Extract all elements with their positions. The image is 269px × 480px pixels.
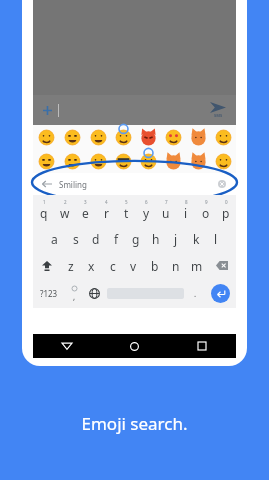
staticText: x — [88, 258, 95, 274]
button[interactable]: z — [61, 252, 81, 279]
staticText: f — [114, 231, 119, 247]
button[interactable]: Emoji — [136, 149, 161, 173]
button[interactable]: Send SMS — [206, 98, 230, 122]
staticText: s — [73, 231, 79, 247]
button[interactable]: c — [102, 252, 123, 279]
staticText: 0 — [225, 199, 228, 205]
staticText: i — [184, 205, 188, 221]
staticText: 8 — [185, 199, 188, 205]
button[interactable]: ?123 — [33, 279, 65, 308]
staticText: l — [214, 231, 218, 247]
button[interactable]: b — [144, 252, 165, 279]
button[interactable]: n — [165, 252, 186, 279]
button[interactable]: l — [206, 225, 226, 252]
staticText: n — [172, 258, 180, 274]
button[interactable]: Attach — [38, 101, 56, 119]
button[interactable]: 6 — [136, 195, 156, 225]
staticText: w — [60, 205, 70, 221]
button[interactable]: Emoji — [161, 149, 186, 173]
staticText: j — [174, 231, 178, 247]
staticText: , — [73, 291, 76, 302]
button[interactable]: f — [106, 225, 126, 252]
staticText: a — [51, 231, 58, 247]
button[interactable]: Emoji — [33, 149, 59, 173]
staticText: 6 — [145, 199, 148, 205]
button[interactable]: Emoji — [136, 125, 161, 149]
button[interactable]: 4 — [96, 195, 116, 225]
button[interactable]: 7 — [156, 195, 176, 225]
staticText: m — [191, 258, 203, 274]
button[interactable]: Clear — [216, 178, 228, 190]
button[interactable]: Back — [33, 173, 236, 195]
button[interactable]: Emoji — [186, 149, 211, 173]
staticText: ?123 — [40, 288, 58, 299]
button[interactable]: 5 — [116, 195, 136, 225]
button[interactable]: Recents — [168, 334, 236, 358]
button[interactable]: Emoji — [59, 149, 85, 173]
staticText: z — [68, 258, 74, 274]
button[interactable]: m — [186, 252, 207, 279]
staticText: Smiling — [59, 179, 87, 190]
button[interactable]: Shift — [33, 252, 61, 279]
staticText: d — [92, 231, 100, 247]
staticText: 3 — [84, 199, 87, 205]
button[interactable]: Emoji — [111, 149, 136, 173]
button[interactable]: v — [123, 252, 144, 279]
staticText: 1 — [43, 199, 46, 205]
button[interactable]: Emoji — [85, 149, 111, 173]
staticText: 4 — [105, 199, 108, 205]
staticText: q — [40, 205, 48, 221]
button[interactable]: Emoji — [33, 125, 59, 149]
button[interactable]: . — [186, 279, 205, 308]
button[interactable]: 2 — [54, 195, 75, 225]
staticText: k — [193, 231, 200, 247]
button[interactable]: s — [65, 225, 86, 252]
staticText: c — [110, 258, 116, 274]
staticText: 5 — [125, 199, 128, 205]
button[interactable]: Backspace — [207, 252, 236, 279]
staticText: g — [132, 231, 140, 247]
button[interactable]: Emoji — [161, 125, 186, 149]
button[interactable]: a — [44, 225, 65, 252]
button[interactable]: k — [186, 225, 206, 252]
staticText: SMS — [214, 113, 223, 118]
button[interactable]: Emoji — [211, 149, 236, 173]
staticText: 9 — [205, 199, 208, 205]
button[interactable]: Back — [33, 334, 100, 358]
button[interactable]: 9 — [196, 195, 216, 225]
staticText: p — [222, 205, 230, 221]
staticText: y — [143, 205, 150, 221]
button[interactable]: Emoji — [211, 125, 236, 149]
button[interactable]: Home — [100, 334, 168, 358]
staticText: 7 — [165, 199, 168, 205]
button[interactable]: h — [146, 225, 166, 252]
staticText: r — [104, 205, 109, 221]
staticText: u — [162, 205, 170, 221]
button[interactable]: Emoji — [111, 125, 136, 149]
staticText: v — [130, 258, 137, 274]
button[interactable]: 0 — [216, 195, 236, 225]
button[interactable]: 1 — [33, 195, 54, 225]
staticText: e — [82, 205, 89, 221]
staticText: t — [124, 205, 129, 221]
button[interactable]: d — [86, 225, 106, 252]
other: Back — [41, 178, 53, 190]
button[interactable]: Enter — [211, 284, 230, 303]
staticText: . — [194, 288, 197, 299]
staticText: o — [202, 205, 210, 221]
button[interactable]: Emoji — [186, 125, 211, 149]
staticText: 2 — [64, 199, 67, 205]
button[interactable]: Emoji — [85, 125, 111, 149]
button[interactable]: Comma — [65, 279, 84, 308]
button[interactable]: g — [126, 225, 146, 252]
button[interactable]: Emoji — [59, 125, 85, 149]
button[interactable]: 3 — [75, 195, 96, 225]
button[interactable]: 8 — [176, 195, 196, 225]
button[interactable]: Change language — [84, 279, 105, 308]
staticText: Emoji search. — [0, 412, 269, 435]
staticText: b — [151, 258, 159, 274]
button[interactable]: j — [166, 225, 186, 252]
staticText: h — [152, 231, 160, 247]
button[interactable]: x — [81, 252, 102, 279]
